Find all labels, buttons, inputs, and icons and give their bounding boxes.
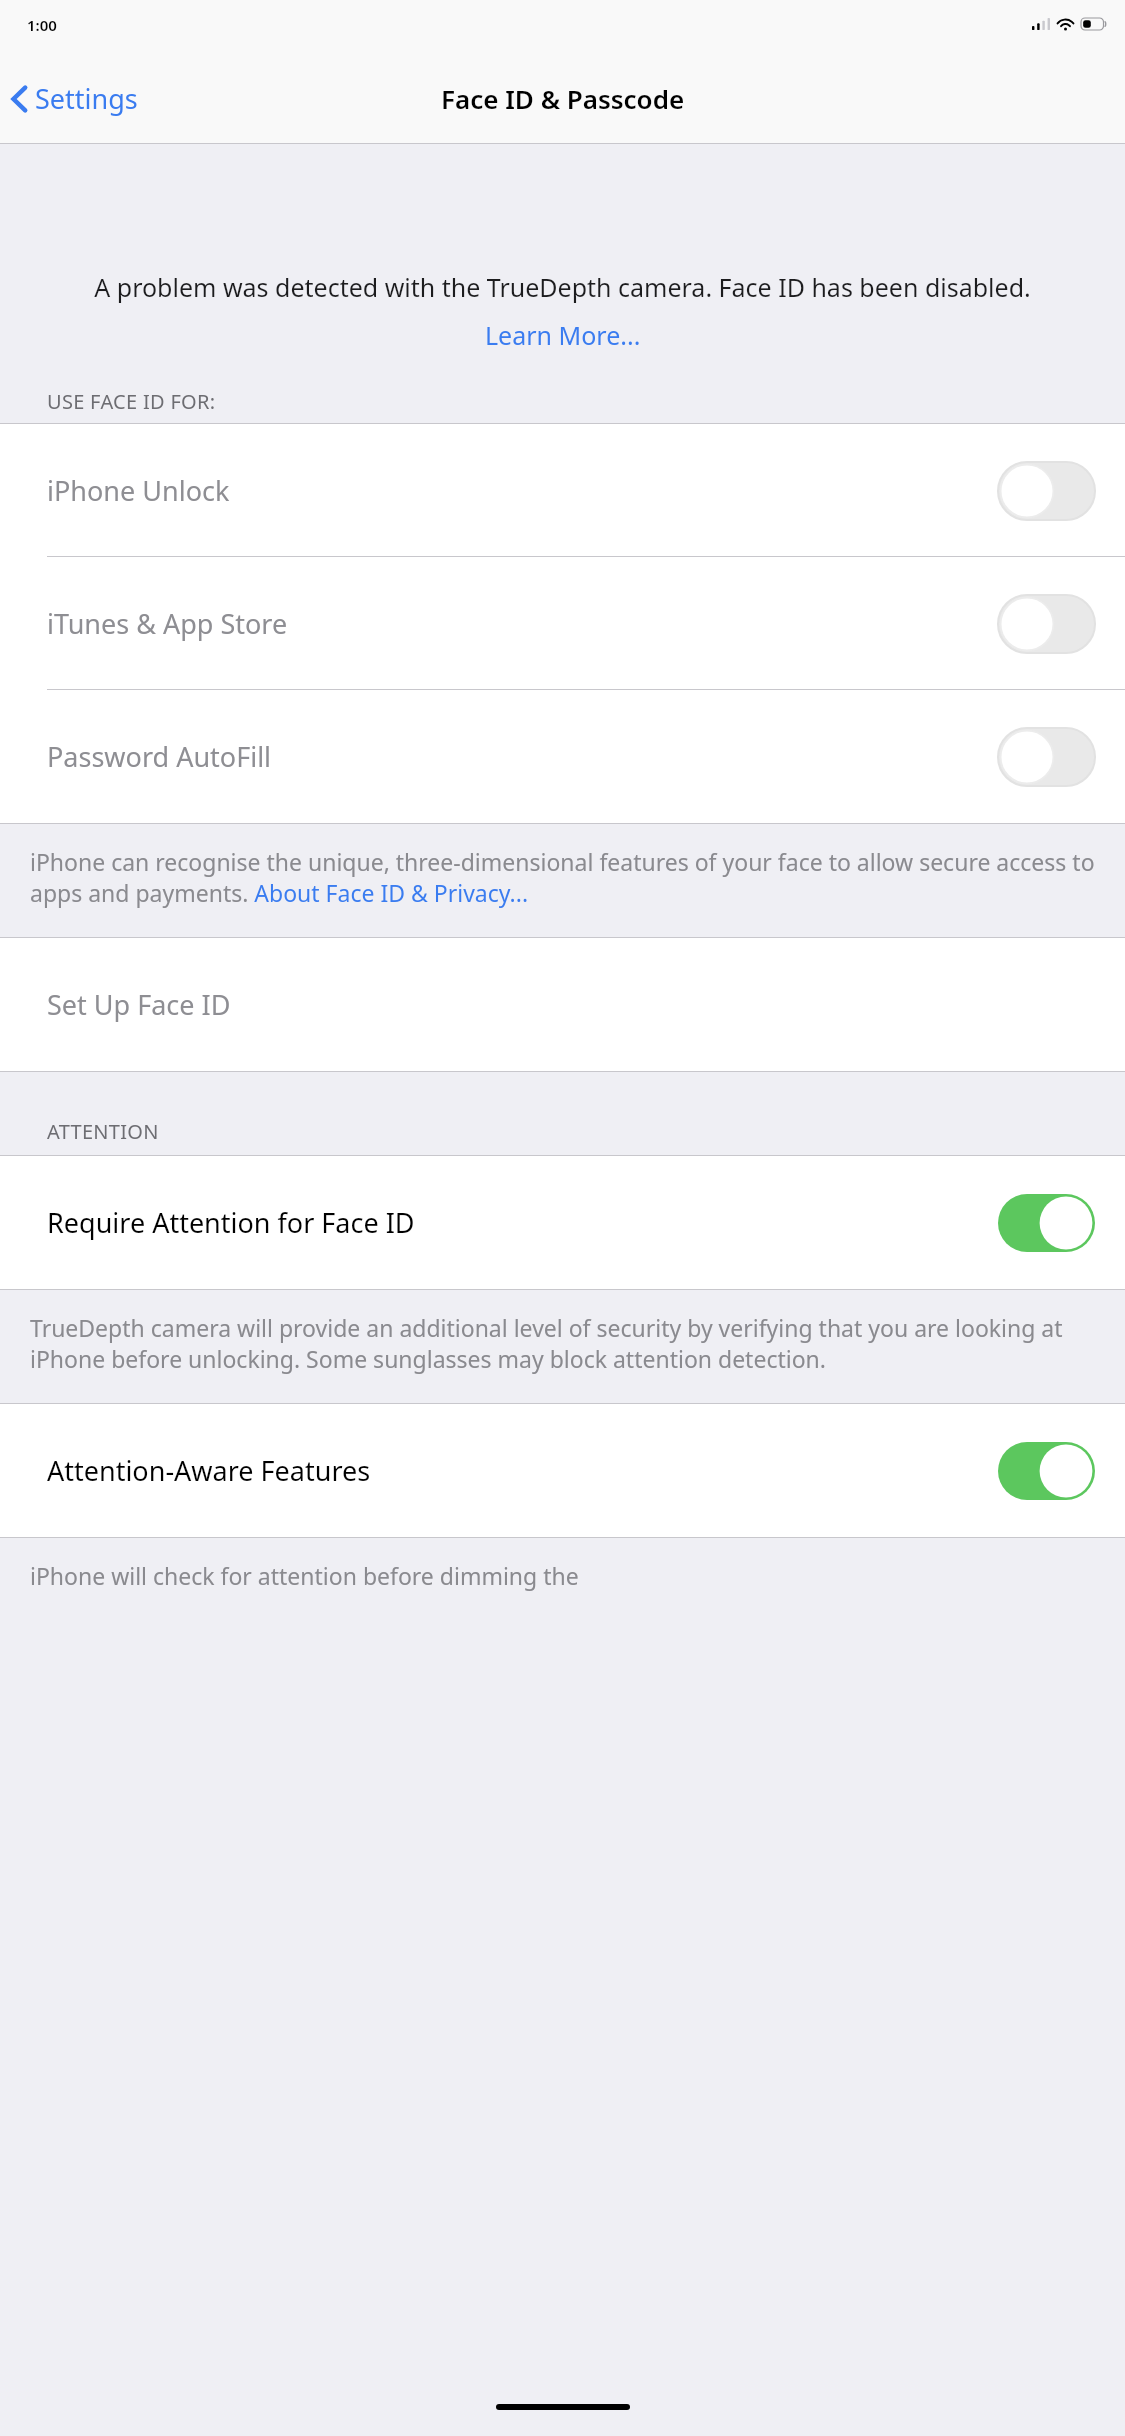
staticText: iPhone can recognise the unique, three-d…: [30, 846, 1095, 909]
staticText: ATTENTION: [47, 1118, 159, 1145]
button[interactable]: Set Up Face ID: [0, 938, 1125, 1071]
staticText: USE FACE ID FOR:: [47, 388, 216, 415]
button[interactable]: Switch on: [998, 1194, 1095, 1252]
button[interactable]: Switch off: [998, 462, 1095, 520]
staticText: A problem was detected with the TrueDept…: [40, 270, 1085, 304]
button[interactable]: Switch off: [998, 595, 1095, 653]
staticText: Face ID & Passcode: [441, 81, 685, 116]
button[interactable]: iPhone Unlock: [0, 424, 1125, 557]
staticText: Set Up Face ID: [47, 986, 231, 1023]
button[interactable]: Learn More...: [479, 316, 647, 354]
button[interactable]: Require Attention for Face ID: [0, 1156, 1125, 1289]
staticText: Attention-Aware Features: [47, 1452, 371, 1489]
staticText: Settings: [35, 80, 138, 117]
button[interactable]: Password AutoFill: [0, 690, 1125, 823]
staticText: 1:00: [27, 15, 57, 35]
button[interactable]: Switch off: [998, 728, 1095, 786]
button[interactable]: iPhone can recognise the unique, three-d…: [0, 824, 1125, 937]
button[interactable]: Settings: [0, 70, 148, 127]
staticText: iTunes & App Store: [47, 605, 288, 642]
button[interactable]: Attention-Aware Features: [0, 1404, 1125, 1537]
button[interactable]: Switch on: [998, 1442, 1095, 1500]
staticText: Learn More...: [485, 318, 641, 352]
staticText: iPhone Unlock: [47, 472, 230, 509]
staticText: TrueDepth camera will provide an additio…: [30, 1312, 1095, 1375]
staticText: Require Attention for Face ID: [47, 1204, 415, 1241]
button[interactable]: iTunes & App Store: [0, 557, 1125, 690]
staticText: iPhone will check for attention before d…: [30, 1560, 1095, 1591]
staticText: Password AutoFill: [47, 738, 272, 775]
